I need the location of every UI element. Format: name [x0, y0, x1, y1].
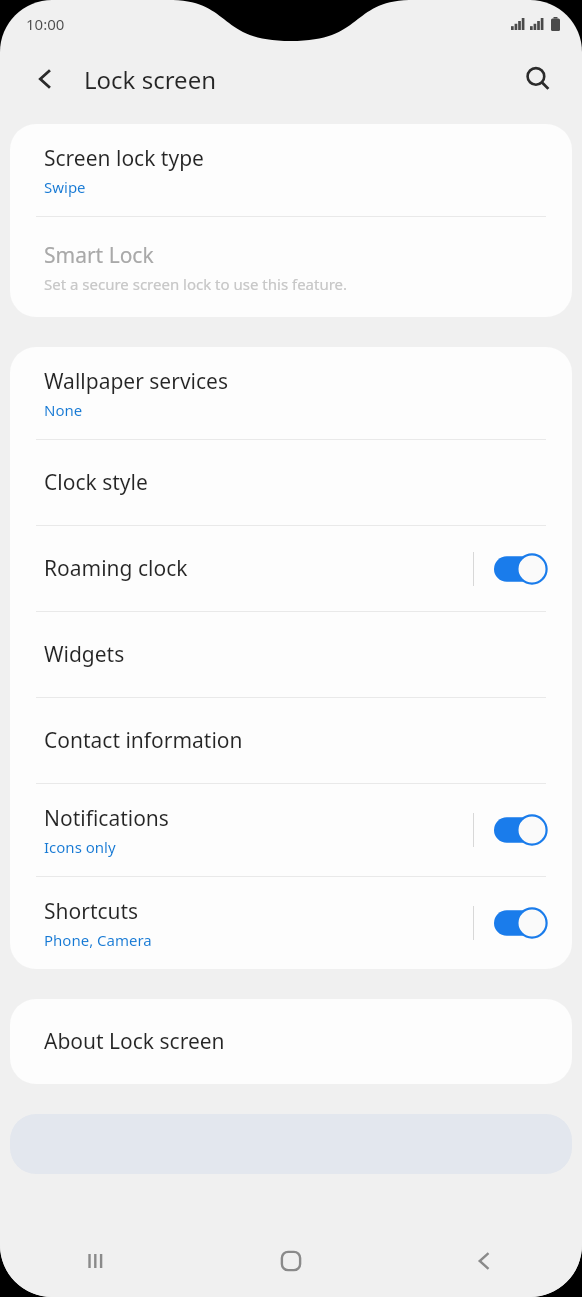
- staticText: Widgets: [44, 640, 125, 669]
- staticText: Phone, Camera: [44, 930, 152, 950]
- staticText: About Lock screen: [44, 1027, 225, 1056]
- button[interactable]: Search: [512, 53, 564, 105]
- button[interactable]: Roaming clock: [10, 526, 572, 611]
- button[interactable]: Widgets: [10, 612, 572, 697]
- staticText: Icons only: [44, 837, 116, 857]
- staticText: Lock screen: [84, 63, 217, 96]
- button[interactable]: Home: [194, 1225, 388, 1297]
- staticText: Swipe: [44, 177, 86, 197]
- button[interactable]: Shortcuts: [10, 877, 572, 969]
- button[interactable]: Back: [20, 53, 72, 105]
- button[interactable]: Recent apps: [0, 1225, 194, 1297]
- button[interactable]: Screen lock type: [10, 124, 572, 216]
- button[interactable]: About Lock screen: [10, 999, 572, 1084]
- staticText: None: [44, 400, 83, 420]
- staticText: Roaming clock: [44, 554, 188, 583]
- staticText: Clock style: [44, 468, 148, 497]
- button[interactable]: Contact information: [10, 698, 572, 783]
- staticText: Screen lock type: [44, 144, 204, 173]
- staticText: Contact information: [44, 726, 243, 755]
- button[interactable]: Roaming clock switch: [473, 552, 548, 586]
- staticText: Set a secure screen lock to use this fea…: [44, 274, 348, 294]
- staticText: Wallpaper services: [44, 367, 228, 396]
- staticText: Notifications: [44, 804, 169, 833]
- staticText: Smart Lock: [44, 241, 154, 270]
- button[interactable]: Smart Lock: [10, 217, 572, 317]
- button[interactable]: Notifications: [10, 784, 572, 876]
- staticText: Shortcuts: [44, 897, 139, 926]
- button[interactable]: Back: [388, 1225, 582, 1297]
- button[interactable]: Shortcuts switch: [473, 906, 548, 940]
- button[interactable]: Notifications switch: [473, 813, 548, 847]
- button[interactable]: Wallpaper services: [10, 347, 572, 439]
- button[interactable]: Clock style: [10, 440, 572, 525]
- staticText: 10:00: [26, 14, 65, 34]
